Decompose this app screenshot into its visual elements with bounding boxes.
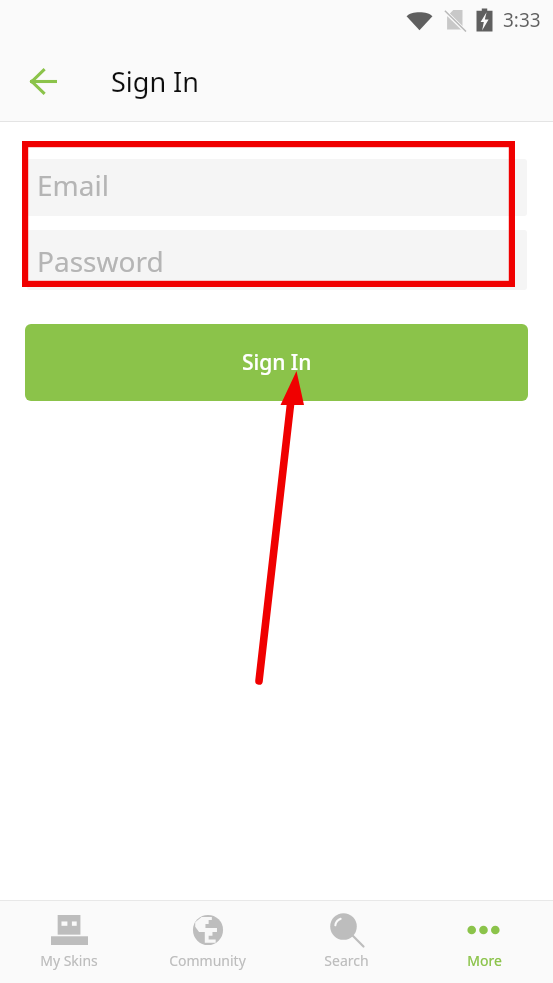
button[interactable]: Navigate back — [15, 53, 71, 109]
button[interactable]: Community — [138, 901, 276, 983]
staticText: My Skins — [40, 951, 98, 970]
staticText: Email — [37, 166, 109, 204]
button[interactable]: Password — [27, 230, 527, 290]
staticText: More — [467, 951, 502, 970]
button[interactable]: My Skins — [0, 901, 138, 983]
staticText: Sign In — [111, 63, 199, 100]
button[interactable]: Search — [277, 901, 415, 983]
staticText: Community — [169, 951, 246, 970]
staticText: Search — [324, 951, 369, 970]
button[interactable]: Email — [27, 159, 527, 216]
button[interactable]: More — [415, 901, 553, 983]
staticText: 3:33 — [503, 7, 541, 33]
staticText: Password — [37, 242, 164, 280]
button[interactable]: Sign In — [25, 324, 528, 401]
staticText: Sign In — [242, 348, 312, 377]
